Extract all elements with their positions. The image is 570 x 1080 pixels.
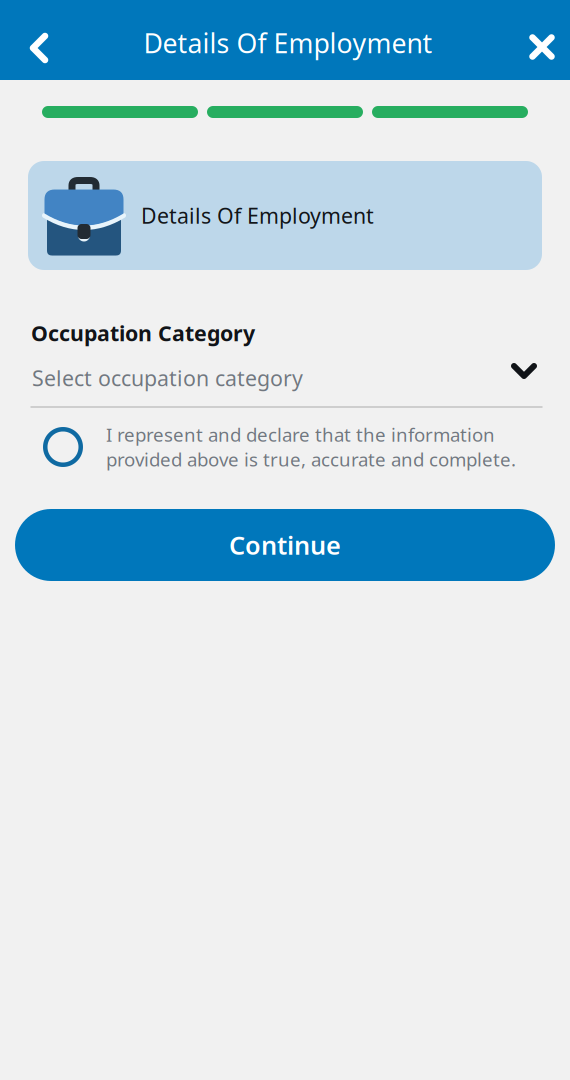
button[interactable]: Select occupation category (29, 355, 541, 401)
staticText: Occupation Category (31, 319, 255, 347)
staticText: Details Of Employment (141, 201, 374, 230)
button[interactable]: Close (492, 0, 570, 80)
staticText: Continue (229, 528, 341, 562)
button[interactable]: I represent and declare that the informa… (29, 429, 541, 477)
staticText: Details Of Employment (143, 25, 432, 61)
button[interactable]: Back (0, 0, 78, 80)
staticText: I represent and declare that the informa… (106, 422, 495, 447)
staticText: Select occupation category (32, 364, 303, 392)
staticText: provided above is true, accurate and com… (106, 447, 516, 472)
button[interactable]: Continue (15, 509, 555, 581)
